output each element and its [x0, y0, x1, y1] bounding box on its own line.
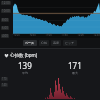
- staticText: 心拍: [41, 41, 47, 45]
- staticText: 4:00: [2, 34, 8, 38]
- staticText: 10:00: [13, 33, 20, 37]
- staticText: 171: [68, 60, 82, 71]
- staticText: 6:00: [2, 26, 8, 30]
- staticText: 170: [2, 77, 7, 81]
- staticText: 平均: [22, 71, 28, 75]
- staticText: 12:00: [2, 1, 10, 5]
- button[interactable]: ペース: [23, 40, 37, 46]
- button[interactable]: 心拍: [39, 40, 49, 46]
- staticText: 高度: [53, 41, 59, 45]
- staticText: 11:00: [45, 33, 52, 37]
- button[interactable]: ピッチ: [63, 40, 77, 46]
- staticText: 139: [18, 60, 32, 71]
- staticText: 11:30: [61, 33, 68, 37]
- other: Heart rate: [4, 53, 9, 58]
- staticText: 10:30: [29, 33, 36, 37]
- button[interactable]: 高度: [51, 40, 61, 46]
- staticText: 心拍数 (bpm): [10, 52, 38, 58]
- staticText: 8:00: [2, 18, 8, 22]
- staticText: 140: [2, 83, 7, 87]
- staticText: 12:00: [77, 33, 84, 37]
- staticText: 10:00: [2, 9, 10, 13]
- staticText: ペース: [25, 41, 35, 45]
- staticText: 最大: [72, 71, 78, 75]
- staticText: 12:30: [93, 33, 100, 37]
- button[interactable]: 171: [50, 60, 100, 75]
- staticText: ピッチ: [65, 41, 75, 45]
- button[interactable]: 139: [0, 60, 50, 75]
